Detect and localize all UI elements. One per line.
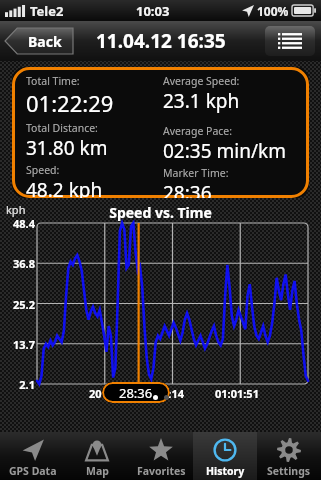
staticText: History [206, 464, 245, 478]
staticText: Tele2 [30, 2, 64, 20]
staticText: 48.4 [2, 216, 35, 231]
staticText: 11.04.12 16:35 [96, 28, 226, 54]
staticText: 28:36 [163, 180, 212, 198]
button[interactable]: History [193, 432, 257, 480]
staticText: 36.8 [2, 256, 35, 271]
staticText: Speed vs. Time [0, 203, 321, 222]
button[interactable]: Settings [257, 432, 321, 480]
staticText: kph [6, 202, 26, 217]
staticText: 31.80 km [26, 135, 108, 161]
staticText: Back [28, 32, 62, 51]
staticText: 01:01:51 [215, 386, 259, 401]
staticText: 10:03 [136, 2, 170, 20]
staticText: Average Speed: [163, 74, 240, 88]
staticText: 1:14 [162, 386, 184, 401]
staticText: 48.2 kph [26, 177, 103, 198]
staticText: Favorites [137, 464, 186, 478]
staticText: 2.1 [2, 377, 35, 392]
button[interactable]: Favorites [129, 432, 193, 480]
staticText: 13.7 [2, 337, 35, 352]
button[interactable]: Map [65, 432, 129, 480]
staticText: Total Distance: [26, 121, 98, 135]
staticText: GPS Data [9, 464, 57, 478]
button[interactable]: GPS Data [0, 432, 65, 480]
button[interactable]: List [265, 26, 315, 56]
staticText: Speed: [26, 163, 60, 177]
staticText: 28:36 [119, 384, 153, 402]
staticText: Settings [267, 464, 311, 478]
button[interactable]: Back [5, 26, 77, 56]
button[interactable]: Total Time: [12, 67, 309, 198]
staticText: 02:35 min/km [163, 138, 286, 164]
staticText: 01:22:29 [26, 88, 114, 118]
staticText: Average Pace: [163, 124, 233, 138]
staticText: Total Time: [26, 74, 80, 88]
staticText: Marker Time: [163, 166, 229, 180]
staticText: 25.2 [2, 297, 35, 312]
button[interactable]: 28:36 [102, 382, 170, 403]
staticText: 23.1 kph [163, 88, 240, 114]
staticText: 20 [89, 386, 102, 401]
staticText: 100% [257, 3, 289, 19]
staticText: Map [86, 464, 109, 478]
